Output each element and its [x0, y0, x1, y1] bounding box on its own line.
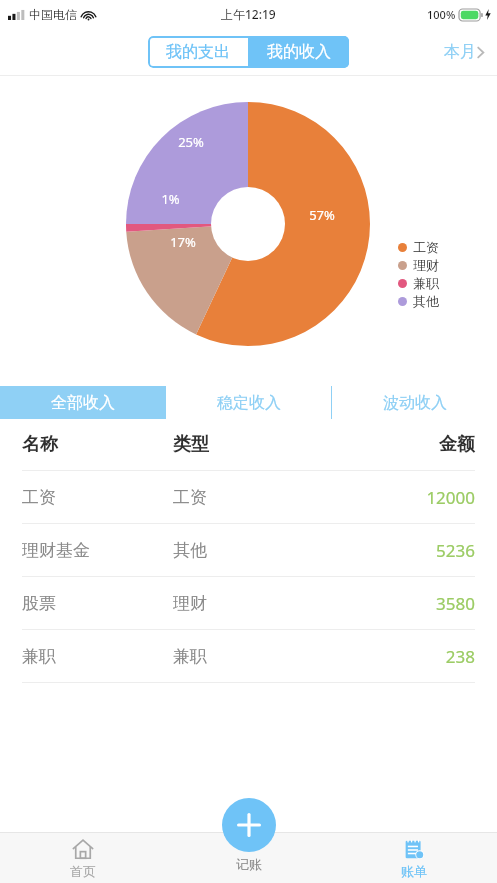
- staticText: 工资: [22, 487, 173, 508]
- staticText: 稳定收入: [217, 393, 281, 413]
- button[interactable]: 波动收入: [332, 386, 497, 419]
- staticText: 其他: [173, 540, 324, 561]
- staticText: 57%: [309, 206, 335, 224]
- button[interactable]: 理财: [398, 256, 439, 274]
- button[interactable]: 账单: [331, 833, 497, 883]
- staticText: 股票: [22, 593, 173, 614]
- button[interactable]: 全部收入: [0, 386, 165, 419]
- button[interactable]: 其他: [398, 292, 439, 310]
- button[interactable]: 本月: [440, 38, 489, 66]
- button[interactable]: 股票: [0, 576, 497, 629]
- staticText: 1%: [161, 190, 180, 208]
- staticText: 理财: [413, 257, 439, 273]
- button[interactable]: 理财基金: [0, 523, 497, 576]
- staticText: 我的支出: [166, 42, 230, 62]
- staticText: 金额: [324, 433, 475, 456]
- button[interactable]: 首页: [0, 833, 165, 883]
- staticText: 理财基金: [22, 540, 173, 561]
- staticText: 我的收入: [267, 42, 331, 62]
- staticText: 12000: [324, 486, 475, 509]
- staticText: 兼职: [413, 275, 439, 291]
- staticText: 兼职: [173, 646, 324, 667]
- staticText: 理财: [173, 593, 324, 614]
- staticText: 兼职: [22, 646, 173, 667]
- button[interactable]: 工资: [398, 238, 439, 256]
- staticText: 本月: [444, 42, 476, 62]
- staticText: 工资: [413, 239, 439, 255]
- staticText: 首页: [70, 863, 96, 879]
- staticText: 中国电信: [29, 7, 77, 22]
- staticText: 17%: [170, 233, 196, 251]
- button[interactable]: 兼职: [0, 629, 497, 682]
- button[interactable]: 稳定收入: [166, 386, 331, 419]
- staticText: 3580: [324, 592, 475, 615]
- button[interactable]: 我的收入: [248, 36, 349, 68]
- button[interactable]: 我的支出: [148, 36, 248, 68]
- staticText: 账单: [401, 863, 427, 879]
- staticText: 238: [324, 645, 475, 668]
- staticText: 记账: [236, 856, 262, 872]
- staticText: 波动收入: [383, 393, 447, 413]
- staticText: 25%: [178, 133, 204, 151]
- button[interactable]: 记账: [222, 798, 276, 852]
- staticText: 5236: [324, 539, 475, 562]
- button[interactable]: 工资: [0, 470, 497, 523]
- staticText: 工资: [173, 487, 324, 508]
- staticText: 名称: [22, 433, 173, 456]
- staticText: 全部收入: [51, 393, 115, 413]
- staticText: 100%: [427, 7, 456, 22]
- staticText: 上午12:19: [221, 6, 276, 22]
- staticText: 类型: [173, 433, 324, 456]
- staticText: 其他: [413, 293, 439, 309]
- button[interactable]: 兼职: [398, 274, 439, 292]
